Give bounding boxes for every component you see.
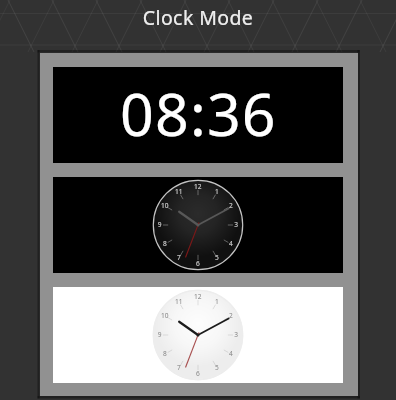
staticText: 08:36 [120,73,277,153]
button[interactable] [53,287,343,383]
staticText: Clock Mode [0,4,396,31]
button[interactable]: 08:36 [53,67,343,163]
button[interactable] [53,177,343,273]
